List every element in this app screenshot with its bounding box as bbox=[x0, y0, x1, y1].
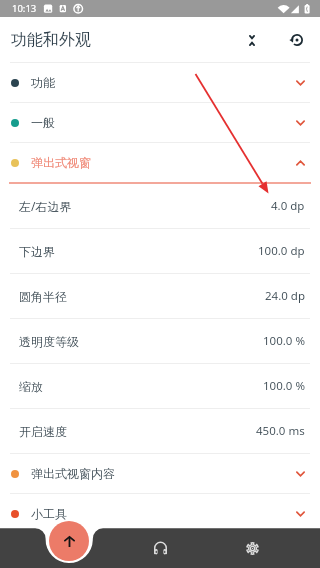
staticText: 一般 bbox=[31, 115, 55, 130]
staticText: 100.0 % bbox=[263, 378, 305, 394]
staticText: 功能和外观 bbox=[11, 30, 91, 50]
button[interactable]: Settings bbox=[230, 528, 274, 568]
staticText: 100.0 % bbox=[263, 333, 305, 349]
button[interactable]: Restore defaults bbox=[277, 20, 317, 60]
staticText: 开启速度 bbox=[19, 424, 67, 439]
button[interactable]: 弹出式视窗 bbox=[0, 143, 320, 182]
staticText: 透明度等级 bbox=[19, 334, 79, 349]
staticText: 弹出式视窗内容 bbox=[31, 466, 115, 481]
button[interactable]: 下边界 bbox=[0, 229, 320, 273]
staticText: 4.0 dp bbox=[271, 198, 305, 214]
button[interactable]: 开启速度 bbox=[0, 409, 320, 453]
button[interactable]: 左/右边界 bbox=[0, 184, 320, 228]
button[interactable]: Collapse all bbox=[232, 20, 272, 60]
staticText: 缩放 bbox=[19, 379, 43, 394]
staticText: 弹出式视窗 bbox=[31, 155, 91, 170]
button[interactable]: 缩放 bbox=[0, 364, 320, 408]
button[interactable]: 功能 bbox=[0, 63, 320, 102]
button[interactable]: 一般 bbox=[0, 103, 320, 142]
staticText: 下边界 bbox=[19, 244, 55, 259]
staticText: 450.0 ms bbox=[256, 423, 305, 439]
button[interactable]: Audio bbox=[138, 528, 182, 568]
staticText: 小工具 bbox=[31, 506, 67, 521]
button[interactable]: Scroll to top bbox=[49, 521, 89, 561]
button[interactable]: 透明度等级 bbox=[0, 319, 320, 363]
staticText: 100.0 dp bbox=[258, 243, 305, 259]
button[interactable]: 弹出式视窗内容 bbox=[0, 454, 320, 493]
staticText: 24.0 dp bbox=[265, 288, 305, 304]
staticText: 10:13 bbox=[12, 2, 37, 15]
staticText: 功能 bbox=[31, 75, 55, 90]
staticText: 左/右边界 bbox=[19, 198, 72, 214]
staticText: 圆角半径 bbox=[19, 289, 67, 304]
button[interactable]: 圆角半径 bbox=[0, 274, 320, 318]
button[interactable]: 小工具 bbox=[0, 494, 320, 533]
